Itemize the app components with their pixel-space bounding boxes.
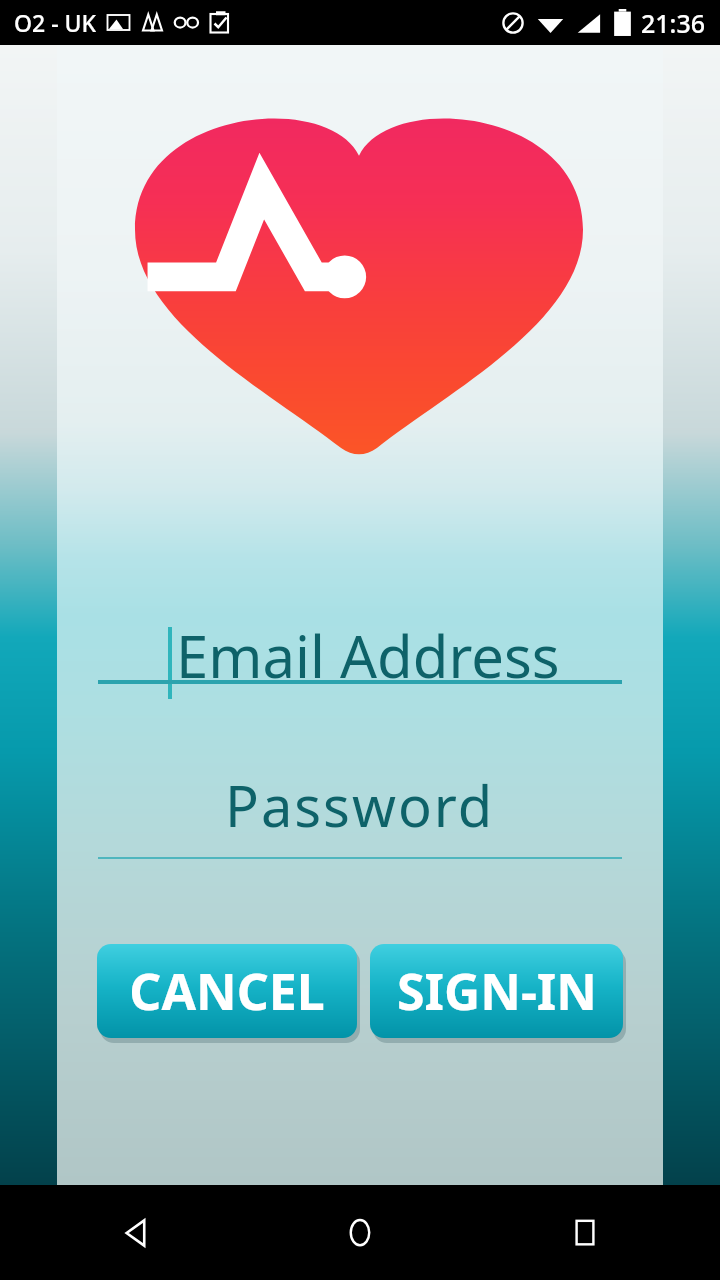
staticText: O2 - UK [14,7,97,38]
staticText: SIGN-IN [397,957,597,1025]
other: Heart rate logo [135,103,583,455]
staticText: CANCEL [129,957,325,1025]
staticText: Password [225,767,495,843]
button[interactable]: Email Address [57,615,663,711]
staticText: 21:36 [641,6,706,40]
staticText: Email Address [176,616,560,695]
button[interactable]: SIGN-IN [370,944,623,1038]
button[interactable]: Password [57,765,663,861]
button[interactable]: CANCEL [97,944,357,1038]
button[interactable]: Home [270,1185,450,1280]
button[interactable]: Back [45,1185,225,1280]
button[interactable]: Recent apps [495,1185,675,1280]
